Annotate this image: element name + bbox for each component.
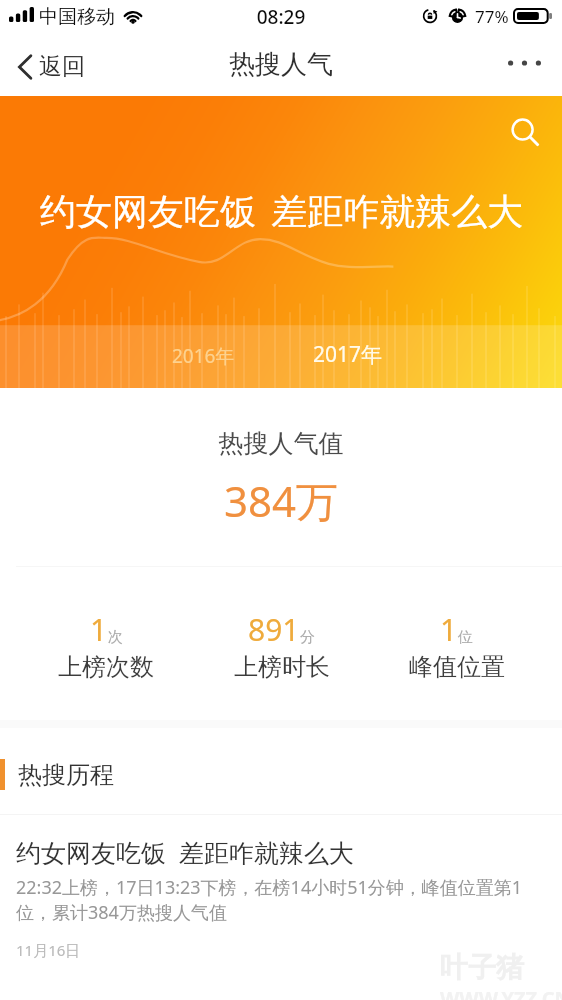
staticText: 位 <box>458 628 473 647</box>
button[interactable]: 返回 <box>4 42 99 91</box>
staticText: 384万 <box>0 472 562 529</box>
staticText: 08:29 <box>0 4 562 30</box>
staticText: 热搜人气值 <box>0 428 562 459</box>
button[interactable]: 2016年 <box>160 338 247 374</box>
button[interactable]: 1 <box>369 609 544 682</box>
button[interactable]: 891 <box>194 609 369 682</box>
staticText: 叶子猪 <box>440 950 524 985</box>
staticText: 热搜人气 <box>0 48 562 81</box>
staticText: 分 <box>300 628 315 647</box>
staticText: 1 <box>90 609 108 650</box>
button[interactable]: More options <box>496 38 553 68</box>
button[interactable]: 2017年 <box>301 335 395 374</box>
staticText: 约女网友吃饭 差距咋就辣么大 <box>16 835 355 869</box>
staticText: 上榜时长 <box>234 652 330 682</box>
staticText: 中国移动 <box>39 5 115 29</box>
staticText: 2017年 <box>313 340 383 369</box>
staticText: 次 <box>108 628 123 647</box>
staticText: 1 <box>440 609 458 650</box>
staticText: 上榜次数 <box>58 652 154 682</box>
button[interactable]: 约女网友吃饭 差距咋就辣么大 <box>0 815 562 984</box>
staticText: 峰值位置 <box>409 652 505 682</box>
staticText: 约女网友吃饭 差距咋就辣么大 <box>40 186 524 235</box>
staticText: WWW.YZZ.CN <box>440 985 562 1000</box>
staticText: 22:32上榜，17日13:23下榜，在榜14小时51分钟，峰值位置第1位，累计… <box>16 875 546 924</box>
staticText: 返回 <box>39 52 85 81</box>
staticText: 891 <box>248 609 300 650</box>
button[interactable]: 1 <box>18 609 194 682</box>
staticText: 热搜历程 <box>18 760 114 790</box>
staticText: 77% <box>475 5 509 28</box>
button[interactable]: Search <box>507 114 544 151</box>
staticText: 2016年 <box>172 343 235 369</box>
staticText: 11月16日 <box>16 940 81 960</box>
